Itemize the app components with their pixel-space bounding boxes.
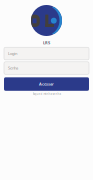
staticText: Login	[8, 51, 17, 56]
staticText: Acessar	[39, 81, 54, 87]
button[interactable]: Esqueci minha senha	[32, 91, 60, 97]
button[interactable]: Senha	[4, 62, 89, 74]
staticText: Senha	[8, 65, 18, 71]
button[interactable]: Login	[4, 47, 89, 60]
staticText: LRS	[43, 40, 50, 45]
button[interactable]: Acessar	[4, 77, 89, 91]
staticText: Esqueci minha senha	[32, 92, 60, 96]
